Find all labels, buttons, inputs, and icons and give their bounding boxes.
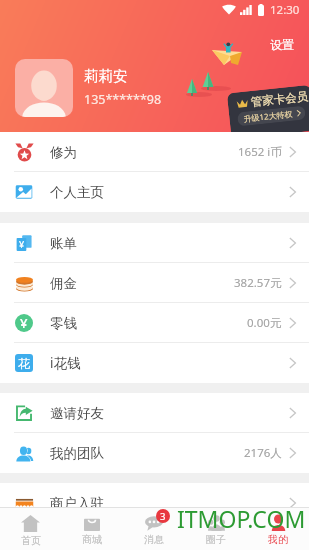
staticText: ¥ — [19, 238, 25, 248]
staticText: 账单 — [50, 235, 77, 252]
button[interactable]: 花 — [0, 343, 309, 383]
button[interactable]: 我的团队 — [0, 433, 309, 473]
staticText: 修为 — [50, 144, 77, 161]
staticText: 管家卡会员 — [250, 89, 309, 109]
staticText: 12:30 — [270, 2, 300, 18]
staticText: 圈子 — [206, 533, 226, 546]
staticText: ITMOP.COM — [177, 503, 306, 534]
staticText: 1652 i币 — [238, 144, 282, 160]
staticText: 我的 — [268, 533, 288, 546]
staticText: 佣金 — [50, 275, 77, 292]
staticText: 135******98 — [84, 91, 162, 108]
staticText: 2176人 — [244, 445, 282, 461]
button[interactable]: 商城 — [61, 508, 123, 550]
staticText: 商城 — [82, 533, 102, 546]
staticText: 花 — [18, 356, 30, 371]
staticText: 我的团队 — [50, 445, 104, 462]
staticText: i花钱 — [50, 354, 81, 372]
button[interactable]: 圈子 — [185, 508, 247, 550]
staticText: 零钱 — [50, 315, 77, 332]
button[interactable]: 修为 — [0, 132, 309, 172]
staticText: ¥ — [20, 314, 28, 332]
button[interactable]: 邀请好友 — [0, 393, 309, 433]
button[interactable]: 我的 — [247, 508, 309, 550]
button[interactable]: 设置 — [266, 34, 298, 55]
staticText: 0.00元 — [247, 315, 282, 331]
staticText: 商户入驻 — [50, 495, 104, 512]
button[interactable]: ¥ — [0, 303, 309, 343]
button[interactable]: 个人主页 — [0, 172, 309, 212]
button[interactable]: 佣金 — [0, 263, 309, 303]
staticText: 3 — [160, 510, 166, 523]
staticText: 莉莉安 — [84, 67, 128, 85]
button[interactable]: ¥ — [0, 223, 309, 263]
staticText: 首页 — [21, 534, 41, 547]
staticText: 382.57元 — [234, 275, 282, 291]
button[interactable]: 商户入驻 — [0, 483, 309, 523]
button[interactable]: Avatar — [15, 59, 73, 117]
button[interactable]: 3 — [123, 508, 185, 550]
staticText: 邀请好友 — [50, 405, 104, 422]
staticText: 升级12大特权 — [243, 108, 294, 124]
button[interactable]: 管家卡会员 — [227, 85, 309, 139]
staticText: 个人主页 — [50, 184, 104, 201]
staticText: 设置 — [270, 37, 294, 52]
button[interactable]: 首页 — [0, 508, 61, 550]
staticText: 消息 — [144, 533, 164, 546]
